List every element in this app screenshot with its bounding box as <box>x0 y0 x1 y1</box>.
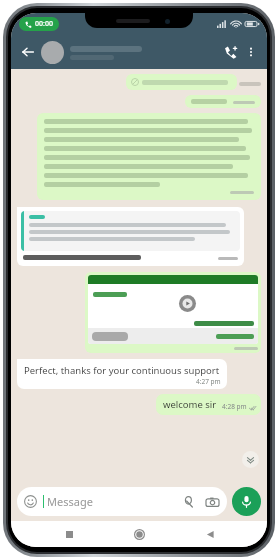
button[interactable]: Recent apps <box>56 521 82 547</box>
button[interactable]: Perfect, thanks for your continuous supp… <box>17 359 227 389</box>
button[interactable]: Add call <box>219 41 241 63</box>
staticText: 00:00 <box>35 19 53 29</box>
button[interactable] <box>41 41 219 64</box>
staticText: Perfect, thanks for your continuous supp… <box>24 364 220 377</box>
staticText: 4:28 pm <box>222 402 247 411</box>
staticText: welcome sir <box>163 398 217 411</box>
button[interactable]: welcome sir <box>156 394 261 415</box>
button[interactable]: Home <box>126 521 152 547</box>
button[interactable]: Voice message <box>232 487 261 516</box>
button[interactable] <box>17 207 244 266</box>
button[interactable]: 00:00 <box>19 17 59 31</box>
button[interactable] <box>85 272 261 353</box>
button[interactable]: Scroll to bottom <box>242 451 259 468</box>
button[interactable]: Back <box>197 521 223 547</box>
button[interactable]: Message <box>17 487 227 516</box>
button[interactable]: Back <box>17 41 39 63</box>
button[interactable] <box>185 95 261 108</box>
staticText: 4:27 pm <box>196 377 221 386</box>
button[interactable]: Attach <box>181 494 197 510</box>
button[interactable]: More options <box>241 42 261 62</box>
button[interactable] <box>126 74 237 90</box>
staticText: Message <box>47 494 93 509</box>
button[interactable] <box>37 113 261 200</box>
button[interactable]: Camera <box>204 494 220 510</box>
